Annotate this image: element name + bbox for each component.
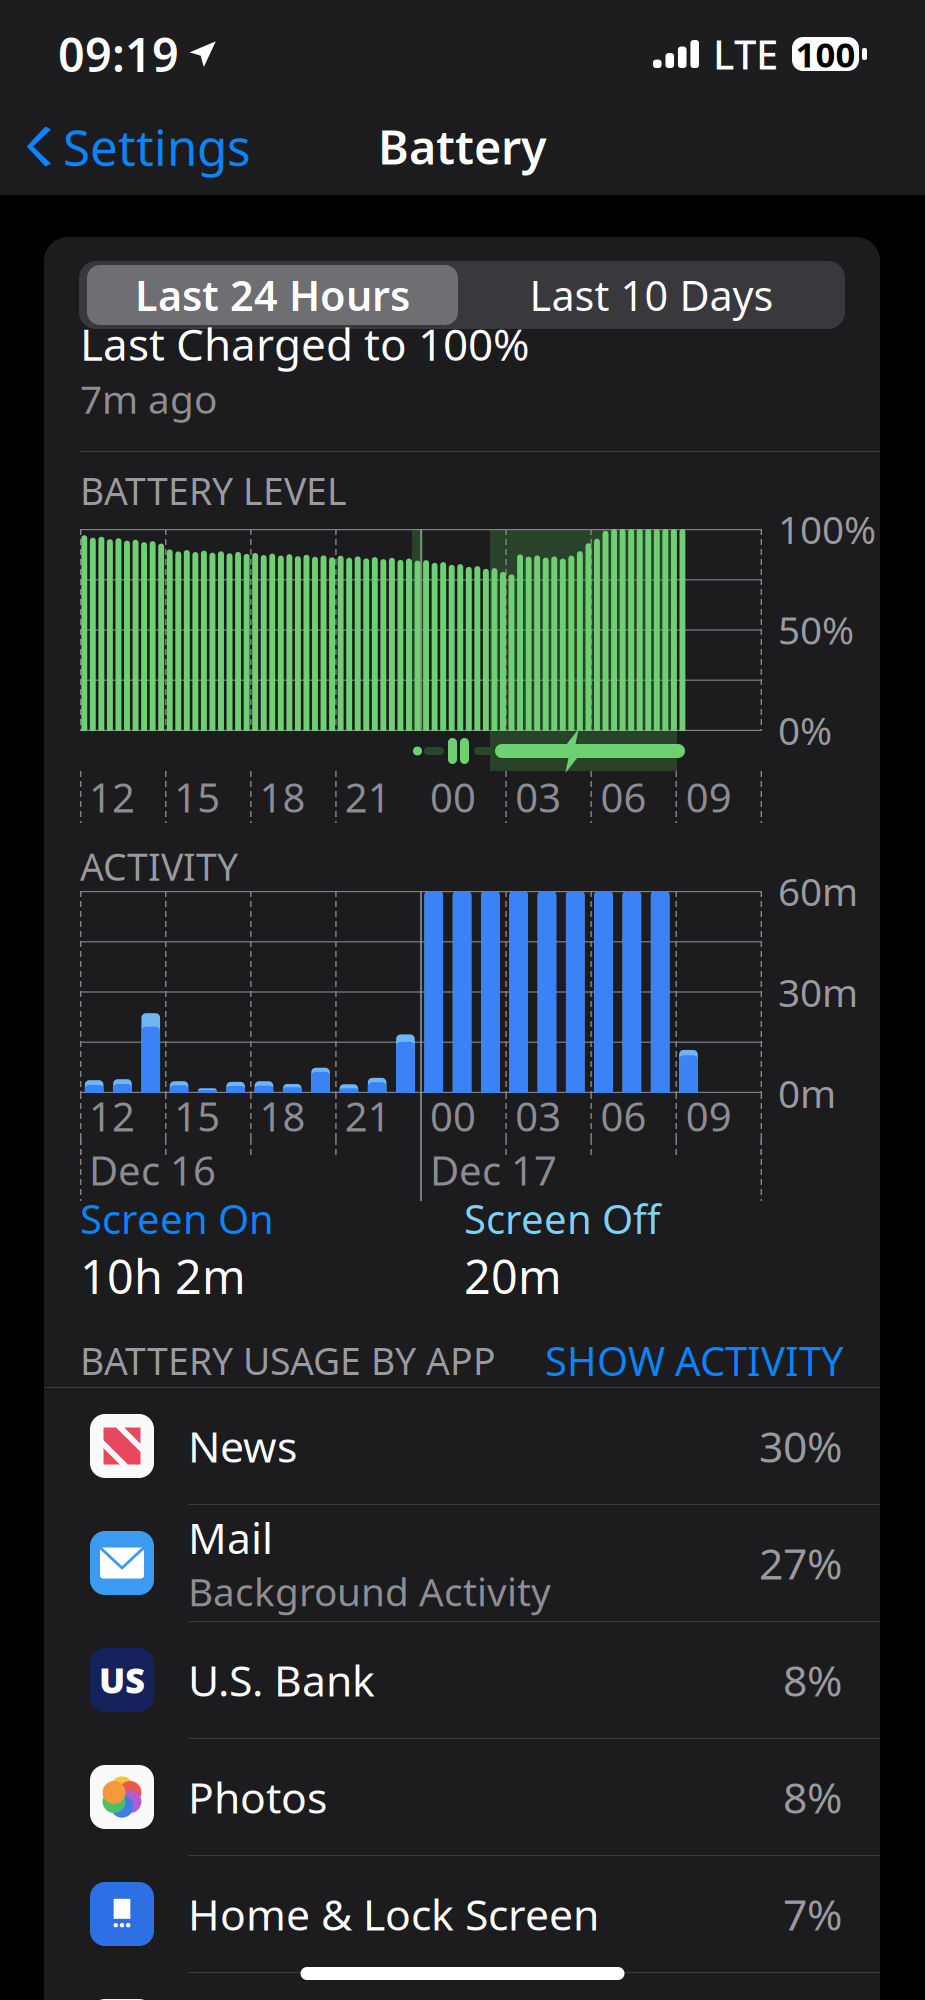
staticText: 18 bbox=[259, 770, 305, 823]
staticText: LTE bbox=[713, 27, 778, 80]
staticText: U.S. Bank bbox=[188, 1652, 375, 1708]
staticText: 8% bbox=[783, 1652, 842, 1708]
button[interactable]: News bbox=[44, 1388, 880, 1504]
button[interactable]: Last 10 Days bbox=[462, 261, 841, 329]
button[interactable]: Mail bbox=[44, 1505, 880, 1621]
button[interactable]: Photos bbox=[44, 1739, 880, 1855]
staticText: Mail bbox=[188, 1509, 273, 1566]
button[interactable]: Last 24 Hours bbox=[83, 261, 462, 329]
staticText: Last 10 Days bbox=[529, 268, 773, 322]
staticText: 21 bbox=[345, 770, 391, 823]
staticText: 7% bbox=[783, 1886, 842, 1942]
button[interactable]: US bbox=[44, 1622, 880, 1738]
staticText: 00 bbox=[430, 1089, 476, 1142]
staticText: 50% bbox=[778, 604, 854, 655]
staticText: 12 bbox=[89, 770, 135, 823]
staticText: 03 bbox=[515, 770, 561, 823]
staticText: Photos bbox=[188, 1769, 327, 1825]
staticText: 30m bbox=[778, 966, 858, 1018]
staticText: Screen Off bbox=[464, 1192, 661, 1245]
staticText: Screen On bbox=[80, 1192, 274, 1245]
staticText: 30% bbox=[759, 1418, 842, 1474]
staticText: Battery bbox=[378, 115, 547, 177]
staticText: 27% bbox=[759, 1535, 842, 1591]
staticText: 60m bbox=[778, 865, 858, 917]
staticText: 15 bbox=[174, 1089, 220, 1142]
staticText: 8% bbox=[783, 1769, 842, 1825]
staticText: 09 bbox=[686, 770, 732, 823]
staticText: 100% bbox=[778, 503, 876, 555]
staticText: Background Activity bbox=[188, 1566, 551, 1617]
staticText: 0m bbox=[778, 1067, 836, 1119]
staticText: 10h 2m bbox=[80, 1245, 246, 1307]
staticText: 00 bbox=[430, 770, 476, 823]
staticText: 18 bbox=[259, 1089, 305, 1142]
staticText: 12 bbox=[89, 1089, 135, 1142]
staticText: 06 bbox=[600, 1089, 646, 1142]
staticText: 09:19 bbox=[58, 23, 179, 85]
staticText: News bbox=[188, 1418, 297, 1474]
staticText: 21 bbox=[345, 1089, 391, 1142]
button[interactable]: Home & Lock Screen bbox=[44, 1856, 880, 1972]
button[interactable]: Settings bbox=[0, 98, 265, 195]
staticText: 100 bbox=[795, 31, 855, 77]
staticText: 20m bbox=[464, 1245, 562, 1307]
staticText: Dec 16 bbox=[89, 1143, 216, 1196]
staticText: Dec 17 bbox=[430, 1143, 557, 1196]
staticText: BATTERY USAGE BY APP bbox=[80, 1336, 496, 1385]
staticText: Last 24 Hours bbox=[135, 268, 410, 322]
staticText: ACTIVITY bbox=[80, 841, 238, 891]
button[interactable]: SHOW ACTIVITY bbox=[545, 1334, 844, 1387]
button[interactable]: Chat bbox=[44, 1973, 880, 2000]
staticText: Settings bbox=[63, 114, 251, 179]
staticText: 06 bbox=[600, 770, 646, 823]
staticText: SHOW ACTIVITY bbox=[545, 1334, 844, 1387]
staticText: 15 bbox=[174, 770, 220, 823]
staticText: 09 bbox=[686, 1089, 732, 1142]
staticText: Last Charged to 100% bbox=[80, 315, 530, 373]
staticText: 7m ago bbox=[80, 373, 217, 424]
staticText: US bbox=[99, 1657, 145, 1703]
staticText: 0% bbox=[778, 704, 832, 756]
staticText: BATTERY LEVEL bbox=[80, 466, 347, 515]
staticText: Home & Lock Screen bbox=[188, 1886, 599, 1942]
staticText: 03 bbox=[515, 1089, 561, 1142]
